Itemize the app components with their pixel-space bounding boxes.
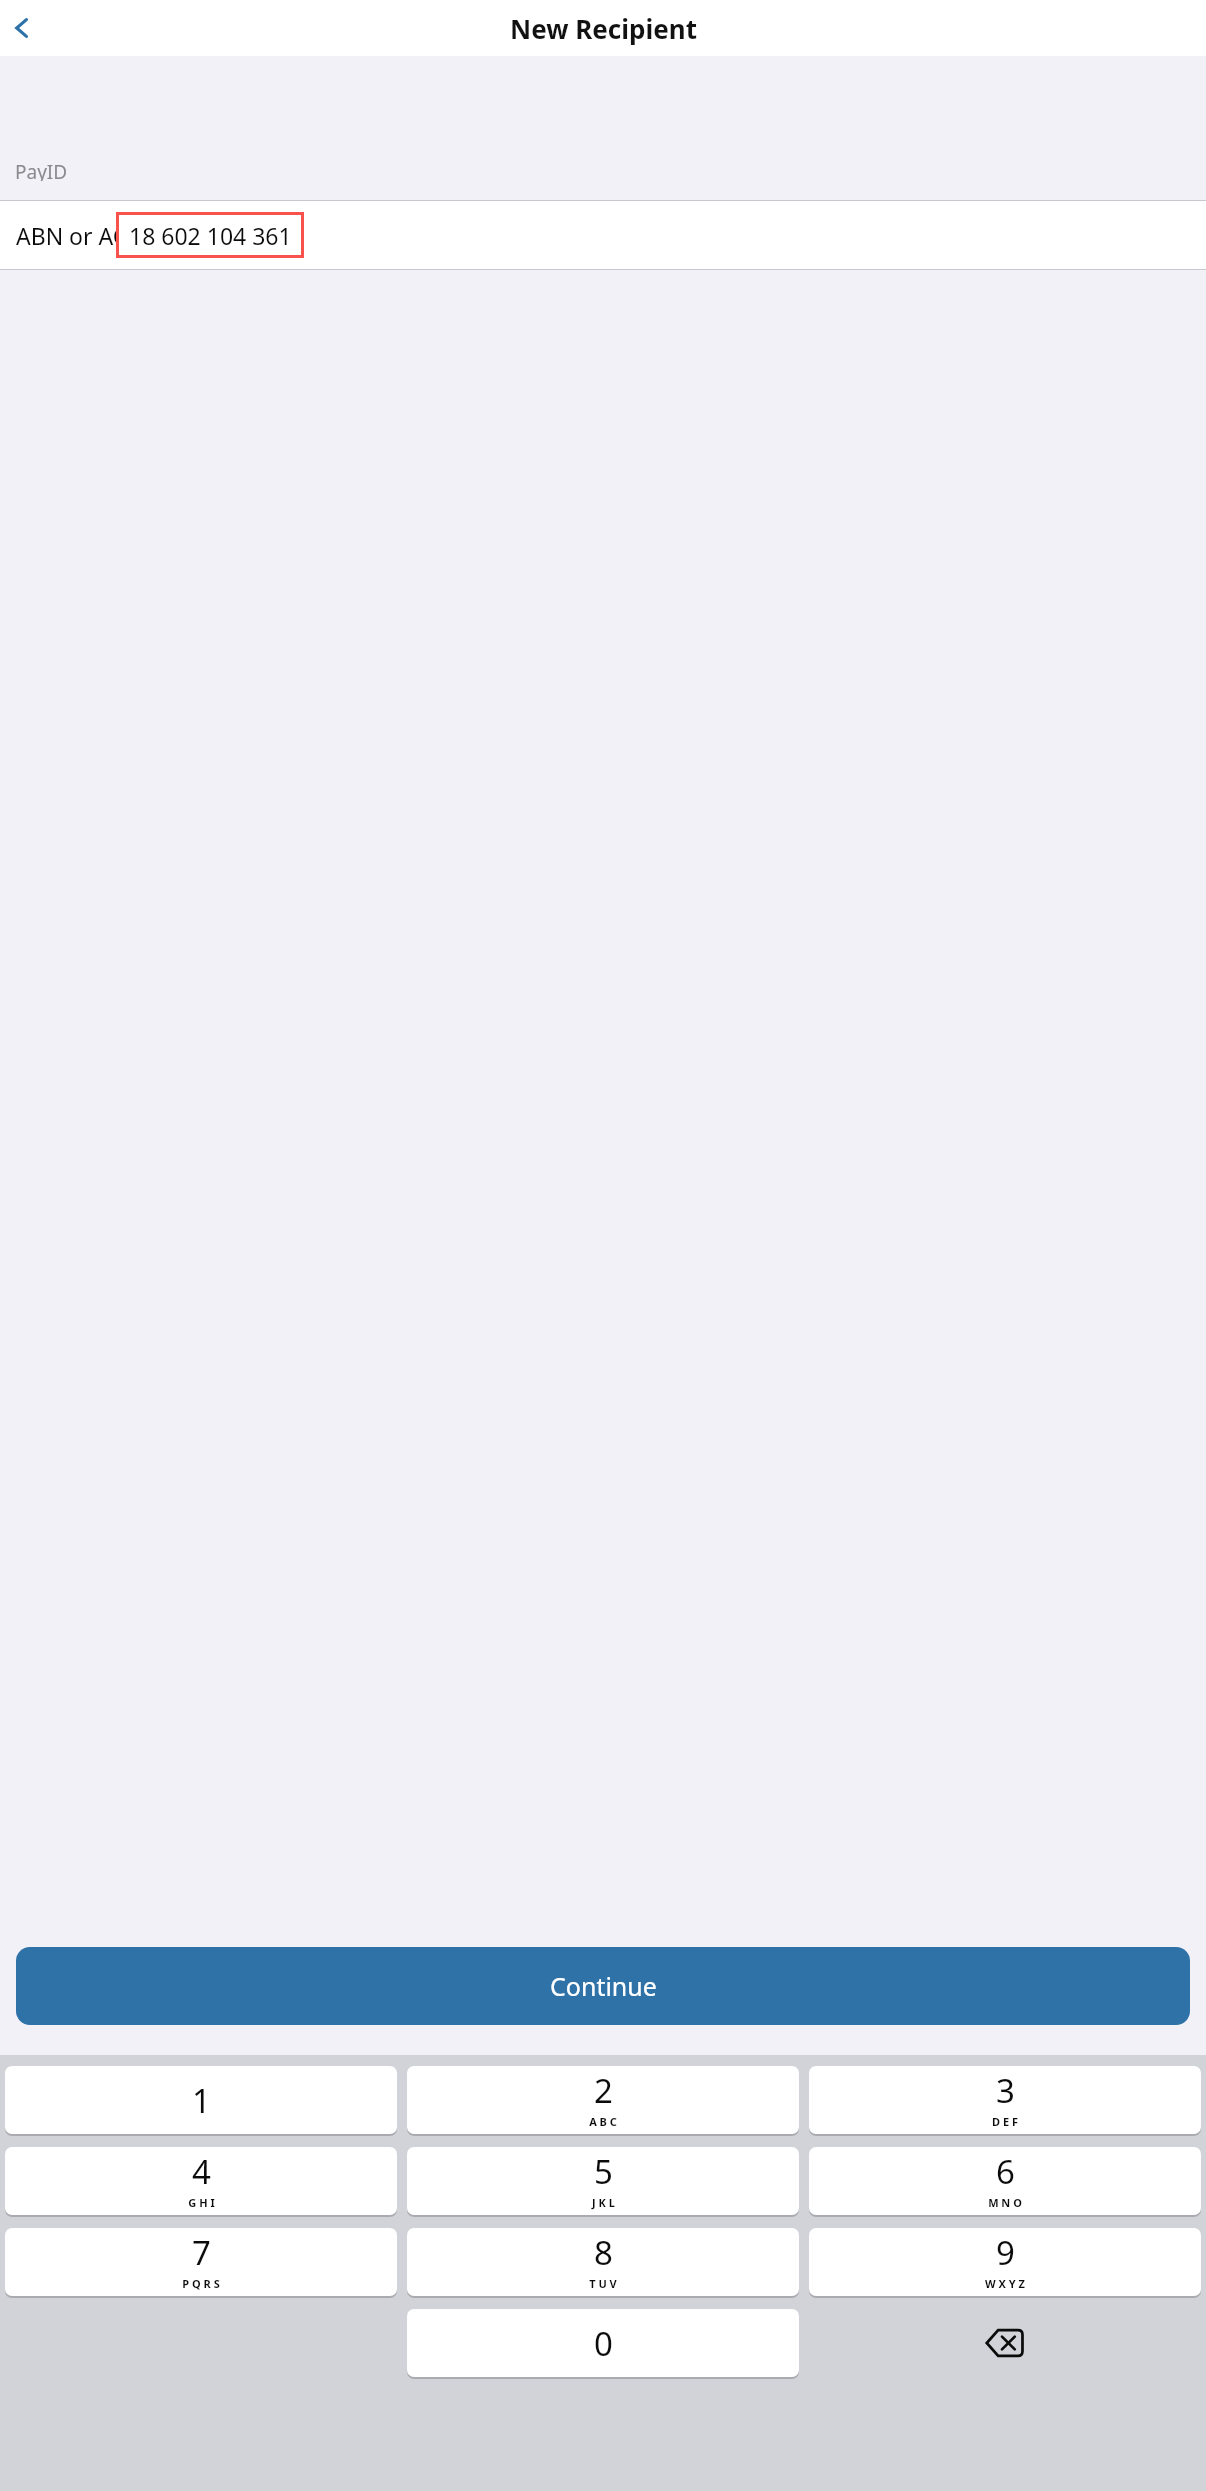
- staticText: 3: [996, 2068, 1015, 2113]
- button[interactable]: 6: [809, 2147, 1201, 2215]
- staticText: ABN or ACN: [16, 220, 145, 251]
- staticText: J K L: [592, 2195, 615, 2210]
- staticText: PayID: [15, 159, 68, 181]
- button[interactable]: 4: [5, 2147, 397, 2215]
- staticText: 6: [996, 2149, 1015, 2194]
- staticText: W X Y Z: [985, 2276, 1025, 2291]
- staticText: G H I: [188, 2195, 215, 2210]
- button[interactable]: 7: [5, 2228, 397, 2296]
- button[interactable]: 1: [5, 2066, 397, 2134]
- staticText: 18 602 104 361: [129, 220, 292, 251]
- staticText: 1: [192, 2078, 211, 2123]
- button[interactable]: Backspace: [945, 2308, 1065, 2378]
- staticText: 8: [594, 2230, 613, 2275]
- button[interactable]: 3: [809, 2066, 1201, 2134]
- staticText: Continue: [550, 1969, 657, 2003]
- staticText: 4: [192, 2149, 211, 2194]
- staticText: 2: [594, 2068, 613, 2113]
- button[interactable]: 5: [407, 2147, 799, 2215]
- staticText: T U V: [589, 2276, 617, 2291]
- staticText: M N O: [988, 2195, 1022, 2210]
- button[interactable]: 9: [809, 2228, 1201, 2296]
- button[interactable]: 8: [407, 2228, 799, 2296]
- staticText: A B C: [589, 2114, 617, 2129]
- staticText: 0: [594, 2321, 613, 2366]
- button[interactable]: 2: [407, 2066, 799, 2134]
- staticText: New Recipient: [510, 11, 697, 46]
- button[interactable]: Back: [2, 8, 42, 48]
- button[interactable]: Continue: [16, 1947, 1190, 2025]
- staticText: 5: [594, 2149, 613, 2194]
- button[interactable]: 18 602 104 361: [116, 212, 304, 258]
- button[interactable]: ABN or ACN: [0, 200, 1206, 270]
- staticText: 7: [192, 2230, 211, 2275]
- staticText: D E F: [992, 2114, 1018, 2129]
- staticText: P Q R S: [182, 2276, 220, 2291]
- button[interactable]: 0: [407, 2309, 799, 2377]
- staticText: 9: [996, 2230, 1015, 2275]
